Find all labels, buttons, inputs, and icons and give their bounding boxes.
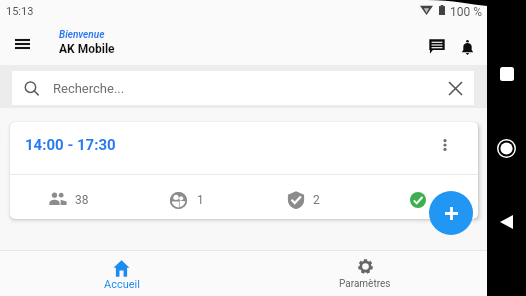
- staticText: 15:13: [6, 5, 34, 18]
- button[interactable]: Accueil: [0, 251, 243, 296]
- button[interactable]: Notifications: [451, 31, 483, 63]
- staticText: Bienvenue: [59, 29, 105, 41]
- button[interactable]: Récents: [500, 67, 514, 81]
- staticText: 1: [197, 193, 204, 207]
- staticText: AK Mobile: [59, 42, 115, 56]
- button[interactable]: 38: [49, 185, 89, 215]
- button[interactable]: Effacer: [442, 75, 468, 101]
- button[interactable]: Paramètres: [243, 251, 487, 296]
- staticText: Paramètres: [339, 278, 391, 290]
- button[interactable]: Ajouter: [429, 191, 473, 235]
- button[interactable]: 1: [170, 185, 204, 215]
- button[interactable]: 14:00 - 17:30: [10, 122, 478, 174]
- staticText: 2: [313, 193, 320, 207]
- button[interactable]: Valide: [405, 187, 431, 213]
- button[interactable]: 2: [287, 185, 320, 215]
- staticText: Recherche...: [53, 81, 125, 96]
- button[interactable]: Plus d'options: [432, 132, 458, 158]
- staticText: Accueil: [104, 278, 140, 291]
- button[interactable]: Menu: [6, 27, 39, 60]
- button[interactable]: Messages: [421, 30, 453, 62]
- staticText: 38: [75, 193, 89, 207]
- staticText: 14:00 - 17:30: [25, 136, 116, 154]
- button[interactable]: Retour: [500, 215, 513, 229]
- staticText: 100 %: [450, 5, 482, 19]
- button[interactable]: Accueil: [497, 139, 516, 158]
- button[interactable]: Recherche...: [12, 71, 474, 105]
